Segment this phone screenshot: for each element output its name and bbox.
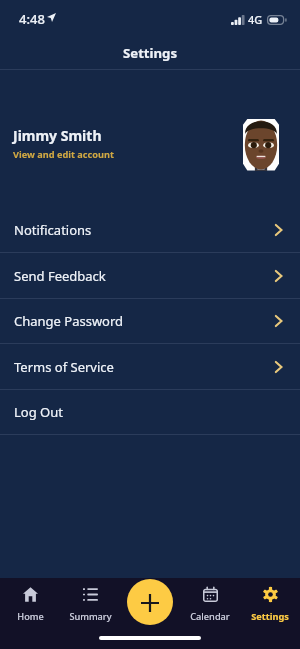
button[interactable]: Home	[0, 584, 60, 632]
button[interactable]: Settings	[240, 584, 300, 632]
button[interactable]: Jimmy Smith	[0, 104, 300, 176]
button[interactable]: Send Feedback	[0, 253, 300, 299]
staticText: Change Password	[14, 312, 124, 330]
button[interactable]: Summary	[60, 584, 120, 632]
staticText: 4:48	[19, 10, 45, 28]
staticText: Home	[17, 610, 44, 623]
staticText: Log Out	[14, 403, 63, 421]
staticText: Notifications	[14, 221, 92, 239]
staticText: Summary	[69, 610, 112, 623]
staticText: Send Feedback	[14, 267, 106, 285]
button[interactable]: Notifications	[0, 207, 300, 253]
staticText: Calendar	[190, 610, 230, 623]
staticText: View and edit account	[13, 148, 115, 161]
button[interactable]: Log Out	[0, 389, 300, 435]
button[interactable]: Calendar	[180, 584, 240, 632]
button[interactable]: Terms of Service	[0, 344, 300, 390]
staticText: 4G	[248, 12, 263, 27]
staticText: Settings	[251, 610, 289, 623]
staticText: Terms of Service	[14, 358, 114, 376]
button[interactable]: Add	[127, 579, 173, 625]
staticText: Settings	[123, 44, 178, 62]
button[interactable]: Change Password	[0, 298, 300, 344]
staticText: Jimmy Smith	[13, 126, 102, 145]
